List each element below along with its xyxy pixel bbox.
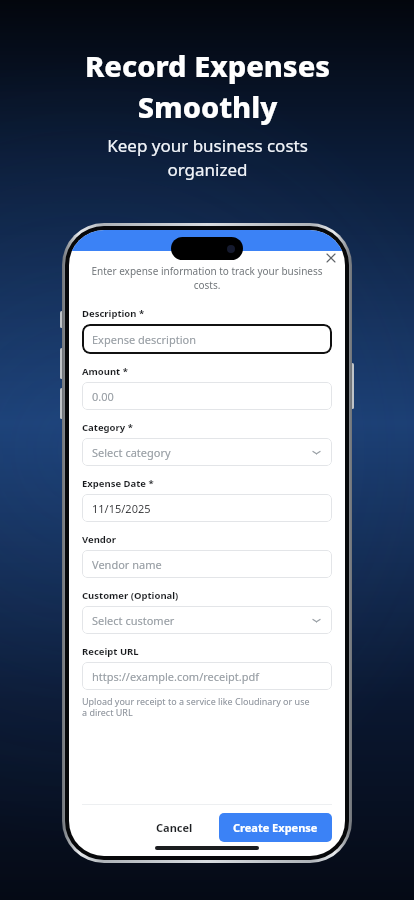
staticText: Select customer	[92, 613, 175, 628]
button[interactable]: Close	[324, 251, 337, 264]
staticText: Cancel	[156, 820, 193, 835]
staticText: Enter expense information to track your …	[83, 264, 331, 292]
staticText: Vendor	[82, 533, 117, 546]
button[interactable]: 11/15/2025	[82, 494, 332, 522]
staticText: Expense description	[92, 332, 196, 347]
staticText: Vendor name	[92, 557, 162, 572]
button[interactable]: Cancel	[138, 813, 211, 842]
button[interactable]: Vendor name	[82, 550, 332, 578]
button[interactable]: https://example.com/receipt.pdf	[82, 662, 332, 690]
staticText: Receipt URL	[82, 645, 139, 658]
button[interactable]: 0.00	[82, 382, 332, 410]
staticText: Customer (Optional)	[82, 589, 179, 602]
button[interactable]: Create Expense	[219, 813, 332, 842]
button[interactable]: Expense description	[82, 324, 332, 354]
staticText: Upload your receipt to a service like Cl…	[82, 695, 310, 719]
button[interactable]: Select category	[82, 438, 332, 466]
staticText: Select category	[92, 445, 171, 460]
staticText: 11/15/2025	[92, 501, 151, 516]
button[interactable]: Select customer	[82, 606, 332, 634]
staticText: Keep your business costs organized	[107, 134, 308, 181]
staticText: Category *	[82, 421, 133, 434]
staticText: Record Expenses Smoothly	[85, 46, 330, 127]
staticText: 0.00	[92, 389, 114, 404]
staticText: Expense Date *	[82, 477, 154, 490]
staticText: Create Expense	[233, 820, 318, 835]
staticText: https://example.com/receipt.pdf	[92, 669, 260, 684]
staticText: Amount *	[82, 365, 128, 378]
staticText: Description *	[82, 307, 145, 320]
